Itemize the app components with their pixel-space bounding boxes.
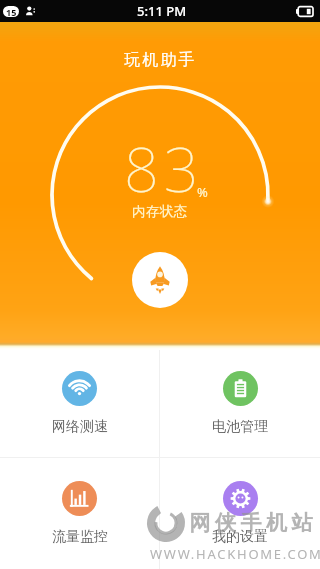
staticText: 5:11 PM: [137, 2, 187, 20]
button[interactable]: 电池管理: [160, 350, 320, 457]
staticText: 我的设置: [212, 528, 268, 546]
staticText: 网侠手机站: [187, 510, 315, 536]
button[interactable]: 流量监控: [0, 458, 159, 569]
button[interactable]: 我的设置: [160, 458, 320, 569]
button[interactable]: 一键加速: [132, 252, 188, 308]
staticText: 电池管理: [212, 418, 268, 436]
staticText: 15: [6, 6, 17, 17]
staticText: WWW.HACKHOME.COM: [150, 545, 320, 563]
staticText: 83: [124, 127, 204, 210]
staticText: 流量监控: [52, 528, 108, 546]
staticText: 内存状态: [132, 203, 188, 220]
staticText: 网络测速: [52, 418, 108, 436]
button[interactable]: 网络测速: [0, 350, 159, 457]
staticText: %: [197, 183, 208, 201]
staticText: 玩机助手: [124, 50, 197, 70]
